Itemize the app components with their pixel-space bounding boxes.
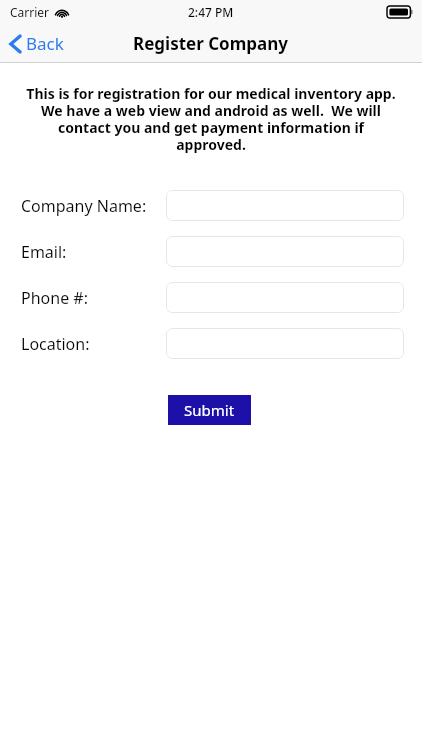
button[interactable]: Location: xyxy=(166,328,404,359)
staticText: Register Company xyxy=(133,32,289,55)
staticText: 2:47 PM xyxy=(188,4,234,20)
staticText: Phone #: xyxy=(21,287,88,309)
other: Back xyxy=(10,35,21,53)
button[interactable]: Company Name: xyxy=(166,190,404,221)
staticText: Carrier xyxy=(10,4,50,20)
staticText: Email: xyxy=(21,241,67,263)
staticText: Location: xyxy=(21,333,90,355)
staticText: Back xyxy=(26,32,64,55)
staticText: Company Name: xyxy=(21,195,147,217)
button[interactable]: Email: xyxy=(166,236,404,267)
button[interactable]: Phone #: xyxy=(166,282,404,313)
staticText: This is for registration for our medical… xyxy=(24,84,398,154)
button[interactable]: Submit xyxy=(168,395,251,425)
button[interactable]: Back xyxy=(0,28,74,59)
staticText: Submit xyxy=(184,400,235,420)
